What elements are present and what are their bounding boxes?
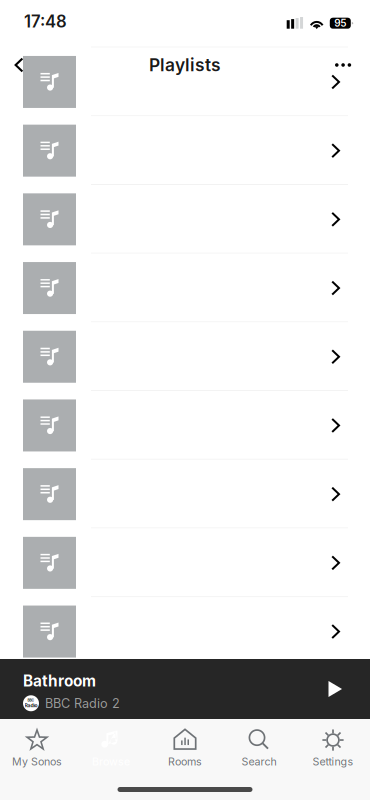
staticText: 95	[334, 17, 346, 29]
button[interactable]: Back	[0, 49, 31, 81]
staticText: 17:48	[24, 11, 67, 31]
staticText: Playlists	[149, 54, 221, 75]
button[interactable]	[0, 460, 370, 528]
staticText: Bathroom	[23, 672, 96, 690]
button[interactable]: Rooms	[148, 726, 222, 770]
staticText: BBC	[27, 698, 34, 702]
button[interactable]	[0, 391, 370, 460]
button[interactable]: More options	[335, 49, 370, 81]
button[interactable]	[0, 48, 370, 116]
button[interactable]	[0, 528, 370, 597]
button[interactable]: Settings	[296, 726, 370, 770]
button[interactable]: My Sonos	[0, 726, 74, 770]
staticText: Radio	[24, 702, 37, 708]
staticText: Rooms	[168, 755, 202, 768]
button[interactable]	[0, 185, 370, 254]
button[interactable]: Bathroom	[0, 659, 370, 719]
button[interactable]	[0, 116, 370, 185]
staticText: My Sonos	[12, 755, 62, 768]
staticText: Settings	[312, 755, 353, 768]
button[interactable]	[0, 597, 370, 666]
staticText: BBC Radio 2	[45, 696, 120, 711]
button[interactable]	[0, 254, 370, 322]
staticText: Search	[241, 755, 276, 768]
button[interactable]	[0, 0, 370, 48]
button[interactable]: Search	[222, 726, 296, 770]
button[interactable]	[0, 322, 370, 391]
